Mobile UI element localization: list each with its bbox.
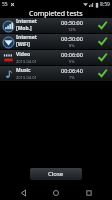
- staticText: Internet [WiFi]: [16, 34, 50, 48]
- staticText: Close: [48, 170, 64, 178]
- staticText: 12%: [68, 27, 76, 32]
- staticText: 00:06:40: [61, 67, 83, 74]
- staticText: 2013-04-01: [16, 75, 37, 80]
- staticText: 00:30:00: [61, 35, 83, 42]
- staticText: 00:30:00: [61, 19, 83, 26]
- staticText: 55: [2, 1, 8, 8]
- staticText: 2013-04-01: [16, 59, 37, 64]
- staticText: Internet [Mob.]: [16, 18, 50, 32]
- staticText: 8:59: [100, 1, 110, 8]
- staticText: 5%: [69, 59, 75, 64]
- button[interactable]: Back: [15, 186, 33, 200]
- staticText: Video: [16, 51, 31, 58]
- button[interactable]: Recents: [80, 186, 98, 200]
- other: Completed: [98, 37, 107, 46]
- button[interactable]: Close: [30, 168, 82, 180]
- staticText: 7%: [69, 75, 75, 80]
- button[interactable]: Internet [Mob.]: [0, 18, 112, 34]
- button[interactable]: Video: [0, 50, 112, 66]
- staticText: Music: [16, 67, 31, 74]
- button[interactable]: Internet [WiFi]: [0, 34, 112, 50]
- staticText: 8%: [69, 43, 75, 48]
- staticText: Completed tests: [29, 9, 83, 18]
- other: Completed: [98, 69, 107, 78]
- button[interactable]: Home: [47, 186, 65, 200]
- button[interactable]: Music: [0, 66, 112, 82]
- other: Completed: [98, 21, 107, 30]
- staticText: 00:06:00: [61, 51, 83, 58]
- other: Completed: [98, 53, 107, 62]
